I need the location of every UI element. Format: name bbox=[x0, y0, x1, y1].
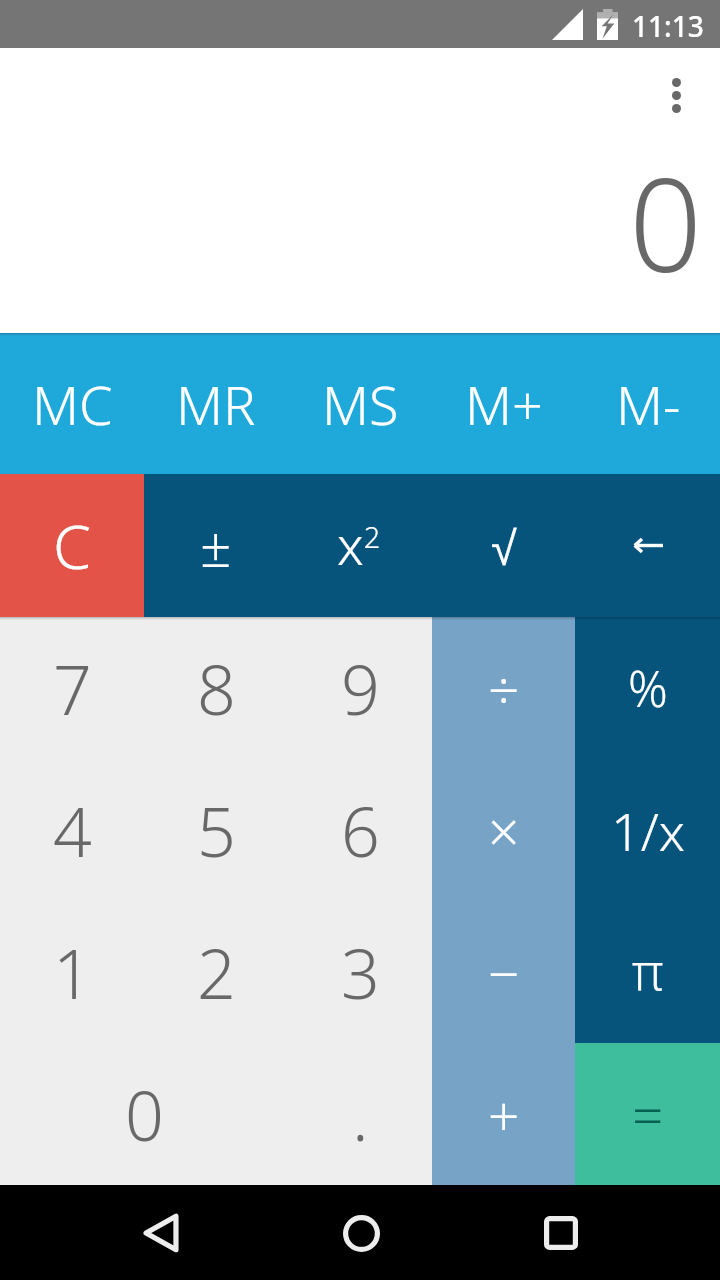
staticText: . bbox=[352, 1068, 369, 1161]
staticText: C bbox=[53, 504, 92, 587]
staticText: ± bbox=[200, 508, 232, 583]
staticText: − bbox=[488, 935, 520, 1010]
button[interactable]: π bbox=[575, 901, 720, 1043]
staticText: 0 bbox=[629, 135, 703, 309]
button[interactable]: + bbox=[432, 1043, 575, 1185]
staticText: 3 bbox=[341, 926, 380, 1019]
staticText: ÷ bbox=[488, 651, 520, 726]
button[interactable]: − bbox=[432, 901, 575, 1043]
button[interactable]: Recents bbox=[519, 1191, 603, 1275]
button[interactable]: More options bbox=[654, 73, 698, 117]
staticText: π bbox=[632, 935, 664, 1004]
button[interactable]: 9 bbox=[288, 617, 432, 759]
button[interactable]: MR bbox=[144, 333, 288, 474]
staticText: √ bbox=[491, 522, 517, 575]
button[interactable]: C bbox=[0, 474, 144, 617]
staticText: 7 bbox=[53, 642, 92, 735]
button[interactable]: 2 bbox=[144, 901, 288, 1043]
button[interactable]: 7 bbox=[0, 617, 144, 759]
staticText: 11:13 bbox=[632, 7, 704, 45]
button[interactable]: √ bbox=[432, 474, 576, 617]
button[interactable]: x2 bbox=[288, 474, 432, 617]
button[interactable]: × bbox=[432, 759, 575, 901]
staticText: x2 bbox=[337, 508, 381, 580]
button[interactable]: ± bbox=[144, 474, 288, 617]
button[interactable]: 1/x bbox=[575, 759, 720, 901]
button[interactable]: 3 bbox=[288, 901, 432, 1043]
staticText: 2 bbox=[197, 926, 236, 1019]
staticText: 0 bbox=[125, 1068, 164, 1161]
button[interactable]: Back bbox=[117, 1191, 201, 1275]
staticText: 9 bbox=[341, 642, 380, 735]
button[interactable]: . bbox=[288, 1043, 432, 1185]
button[interactable]: 0 bbox=[0, 1043, 288, 1185]
button[interactable]: Home bbox=[318, 1191, 402, 1275]
button[interactable]: = bbox=[575, 1043, 720, 1185]
staticText: MR bbox=[176, 367, 256, 441]
button[interactable]: MS bbox=[288, 333, 432, 474]
button[interactable]: 6 bbox=[288, 759, 432, 901]
button[interactable]: % bbox=[575, 617, 720, 759]
button[interactable]: M- bbox=[576, 333, 720, 474]
staticText: M- bbox=[616, 367, 681, 441]
staticText: M+ bbox=[465, 367, 543, 441]
staticText: 4 bbox=[53, 784, 92, 877]
staticText: 6 bbox=[341, 784, 380, 877]
staticText: 8 bbox=[197, 642, 236, 735]
staticText: + bbox=[488, 1077, 520, 1152]
staticText: 1 bbox=[53, 926, 92, 1019]
staticText: = bbox=[632, 1077, 664, 1152]
button[interactable]: MC bbox=[0, 333, 144, 474]
button[interactable]: ÷ bbox=[432, 617, 575, 759]
staticText: 1/x bbox=[611, 795, 685, 866]
button[interactable]: 5 bbox=[144, 759, 288, 901]
staticText: % bbox=[628, 655, 668, 722]
staticText: MS bbox=[322, 367, 399, 441]
button[interactable]: 8 bbox=[144, 617, 288, 759]
button[interactable]: Backspace bbox=[576, 474, 720, 617]
button[interactable]: 1 bbox=[0, 901, 144, 1043]
button[interactable]: 4 bbox=[0, 759, 144, 901]
staticText: 5 bbox=[197, 784, 236, 877]
staticText: × bbox=[488, 793, 520, 868]
staticText: MC bbox=[32, 367, 113, 441]
button[interactable]: M+ bbox=[432, 333, 576, 474]
